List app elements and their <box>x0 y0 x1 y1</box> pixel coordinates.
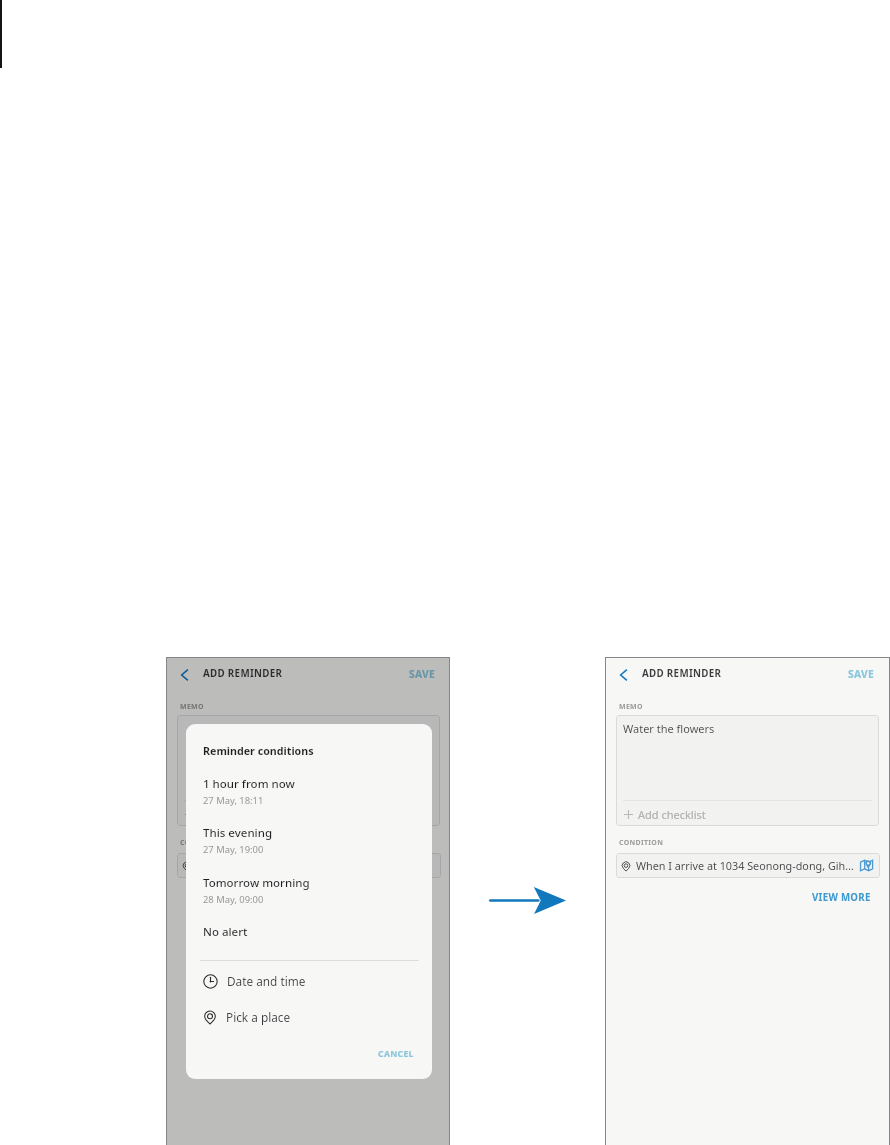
button[interactable]: VIEW MORE <box>812 891 871 904</box>
staticText: MEMO <box>619 702 643 712</box>
staticText: Water the flowers <box>623 721 715 736</box>
button[interactable]: This evening <box>203 825 417 856</box>
staticText: This evening <box>203 825 273 841</box>
button[interactable]: Tomorrow morning <box>203 875 417 906</box>
button[interactable]: Navigate up <box>616 667 632 683</box>
staticText: CONDITION <box>180 838 225 848</box>
button[interactable]: Navigate up <box>177 667 193 683</box>
staticText: Date and time <box>227 973 306 989</box>
button[interactable]: Pick a place <box>203 1008 291 1026</box>
button[interactable]: SAVE <box>409 667 436 681</box>
staticText: 27 May, 18:11 <box>203 794 264 807</box>
staticText: VIEW MORE <box>812 891 871 904</box>
button[interactable]: Add checklist <box>624 806 706 822</box>
staticText: CONDITION <box>619 838 664 848</box>
staticText: Pick a place <box>226 1009 291 1025</box>
button[interactable]: When I arrive at 1034 Seonong-dong, Gihe… <box>616 853 880 878</box>
staticText: MEMO <box>180 702 204 712</box>
other: Navigate up <box>616 667 632 683</box>
other: Next step <box>489 887 566 914</box>
button[interactable] <box>177 853 441 878</box>
staticText: When I arrive at 1034 Seonong-dong, Gihe… <box>636 858 857 873</box>
staticText: CANCEL <box>378 1048 414 1060</box>
staticText: SAVE <box>409 667 436 681</box>
staticText: 28 May, 09:00 <box>203 893 264 906</box>
staticText: Add checklist <box>638 807 706 822</box>
button[interactable]: CANCEL <box>378 1048 414 1060</box>
button[interactable]: Open map <box>860 859 873 872</box>
button[interactable]: Date and time <box>203 972 306 990</box>
staticText: SAVE <box>848 667 875 681</box>
staticText: 1 hour from now <box>203 776 295 792</box>
staticText: ADD REMINDER <box>642 667 722 680</box>
staticText: 27 May, 19:00 <box>203 843 264 856</box>
staticText: No alert <box>203 924 248 940</box>
button[interactable]: Add checklist <box>185 806 267 822</box>
staticText: ADD REMINDER <box>203 667 283 680</box>
button[interactable]: Add checklist <box>177 715 440 826</box>
button[interactable]: SAVE <box>848 667 875 681</box>
other: Navigate up <box>177 667 193 683</box>
button[interactable]: 1 hour from now <box>203 776 417 807</box>
staticText: Reminder conditions <box>203 744 314 759</box>
button[interactable]: No alert <box>203 924 248 940</box>
staticText: Tomorrow morning <box>203 875 310 891</box>
button[interactable]: Water the flowers <box>616 715 879 826</box>
